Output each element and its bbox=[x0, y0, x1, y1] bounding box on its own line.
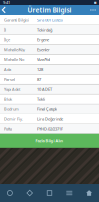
staticText: Parsel bbox=[4, 77, 15, 82]
button[interactable]: İlçe bbox=[0, 35, 99, 45]
button[interactable]: Home bbox=[79, 184, 99, 202]
staticText: İlçe bbox=[4, 37, 10, 42]
button[interactable]: Blok bbox=[0, 94, 99, 104]
button[interactable]: Bodrum bbox=[0, 104, 99, 114]
button[interactable]: More bbox=[87, 5, 99, 15]
button[interactable]: Clock bbox=[0, 184, 20, 202]
staticText: Final Çatıplı bbox=[37, 106, 57, 112]
button[interactable]: List bbox=[59, 184, 79, 202]
staticText: Mahalle/Köy bbox=[4, 47, 25, 52]
button[interactable]: Demir Fiy. bbox=[0, 114, 99, 124]
button[interactable]: Mahalle No bbox=[0, 55, 99, 64]
button[interactable]: Back bbox=[0, 5, 12, 15]
staticText: ▮▮ bbox=[94, 1, 96, 4]
staticText: İl bbox=[4, 27, 6, 32]
staticText: 10 ADET bbox=[37, 87, 52, 92]
button[interactable]: Scan bbox=[40, 184, 59, 202]
staticText: Demir Fiy. bbox=[4, 116, 23, 122]
button[interactable]: Ada bbox=[0, 64, 99, 74]
button[interactable]: Browse bbox=[20, 184, 40, 202]
button[interactable]: İl bbox=[0, 25, 99, 35]
staticText: Tekli bbox=[37, 96, 45, 102]
staticText: Tekirdağ bbox=[37, 27, 52, 32]
staticText: Garanti Bilgisi bbox=[4, 17, 29, 23]
button[interactable]: Mahalle/Köy bbox=[0, 45, 99, 55]
staticText: Fazla Bilgi Alın bbox=[35, 138, 63, 143]
button[interactable]: Fazla Bilgi Alın bbox=[0, 134, 99, 148]
staticText: 87 bbox=[37, 77, 41, 82]
staticText: Lira Değerinde bbox=[37, 116, 63, 122]
staticText: Ada bbox=[4, 67, 11, 72]
staticText: Sıra 001 Listesi bbox=[37, 17, 63, 23]
staticText: 128 bbox=[37, 67, 43, 72]
button[interactable]: Garanti Bilgisi bbox=[0, 15, 99, 25]
staticText: Vize/Yol bbox=[37, 57, 50, 62]
button[interactable]: Yapı Adet bbox=[0, 84, 99, 94]
staticText: Bodrum bbox=[4, 106, 19, 112]
staticText: Ergene bbox=[37, 37, 49, 42]
staticText: 9:41 bbox=[3, 0, 10, 5]
staticText: Esenler bbox=[37, 47, 50, 52]
staticText: Üretim Bilgisi bbox=[27, 6, 71, 14]
staticText: Yapı Adet bbox=[4, 87, 20, 92]
staticText: FYHD-02/2371F bbox=[37, 126, 63, 131]
staticText: Pafta bbox=[4, 126, 12, 131]
button[interactable]: Pafta bbox=[0, 124, 99, 134]
staticText: Blok bbox=[4, 96, 12, 102]
button[interactable]: Parsel bbox=[0, 74, 99, 84]
staticText: Mahalle No bbox=[4, 57, 24, 62]
